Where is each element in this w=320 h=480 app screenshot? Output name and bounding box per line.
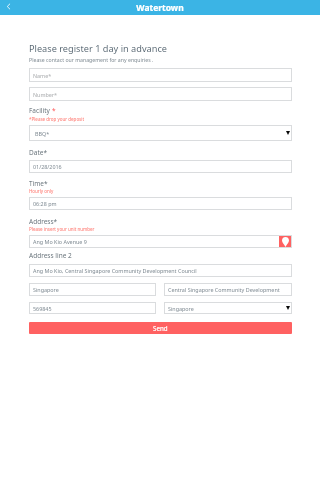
- staticText: Number*: [33, 91, 58, 98]
- staticText: Name*: [33, 72, 52, 79]
- button[interactable]: Ang Mo Kio Avenue 9: [29, 235, 292, 248]
- button[interactable]: Send: [29, 322, 292, 334]
- staticText: Address*: [29, 217, 58, 226]
- staticText: Singapore: [33, 286, 59, 293]
- staticText: Address line 2: [29, 251, 72, 260]
- staticText: Ang Mo Kio Avenue 9: [33, 238, 87, 245]
- button[interactable]: Name*: [29, 68, 292, 82]
- staticText: Please insert your unit number: [29, 226, 95, 232]
- staticText: 06:28 pm: [33, 200, 57, 207]
- staticText: 569845: [33, 305, 52, 312]
- staticText: Hourly only: [29, 188, 54, 194]
- button[interactable]: Back: [0, 0, 17, 15]
- button[interactable]: Singapore: [29, 283, 156, 296]
- button[interactable]: Pick location on map: [279, 235, 292, 248]
- button[interactable]: 01/28/2016: [29, 160, 292, 173]
- staticText: Please contact our management for any en…: [29, 56, 154, 63]
- button[interactable]: 06:28 pm: [29, 197, 292, 210]
- staticText: Date*: [29, 148, 47, 157]
- staticText: Send: [153, 324, 168, 332]
- button[interactable]: Central Singapore Community Development: [164, 283, 292, 296]
- button[interactable]: Ang Mo Kio, Central Singapore Community …: [29, 264, 292, 277]
- staticText: *Please drop your deposit: [29, 116, 85, 122]
- staticText: *: [52, 106, 56, 115]
- button[interactable]: BBQ*: [29, 125, 292, 141]
- button[interactable]: Number*: [29, 87, 292, 101]
- staticText: Central Singapore Community Development: [168, 286, 280, 293]
- staticText: Please register 1 day in advance: [29, 42, 167, 55]
- staticText: BBQ*: [35, 130, 50, 137]
- staticText: Time*: [29, 179, 48, 188]
- button[interactable]: Singapore: [164, 302, 292, 314]
- button[interactable]: 569845: [29, 302, 156, 314]
- staticText: Facility: [29, 106, 52, 115]
- staticText: Singapore: [168, 305, 194, 312]
- staticText: 01/28/2016: [33, 163, 62, 170]
- staticText: Watertown: [0, 2, 320, 14]
- staticText: Ang Mo Kio, Central Singapore Community …: [33, 267, 197, 274]
